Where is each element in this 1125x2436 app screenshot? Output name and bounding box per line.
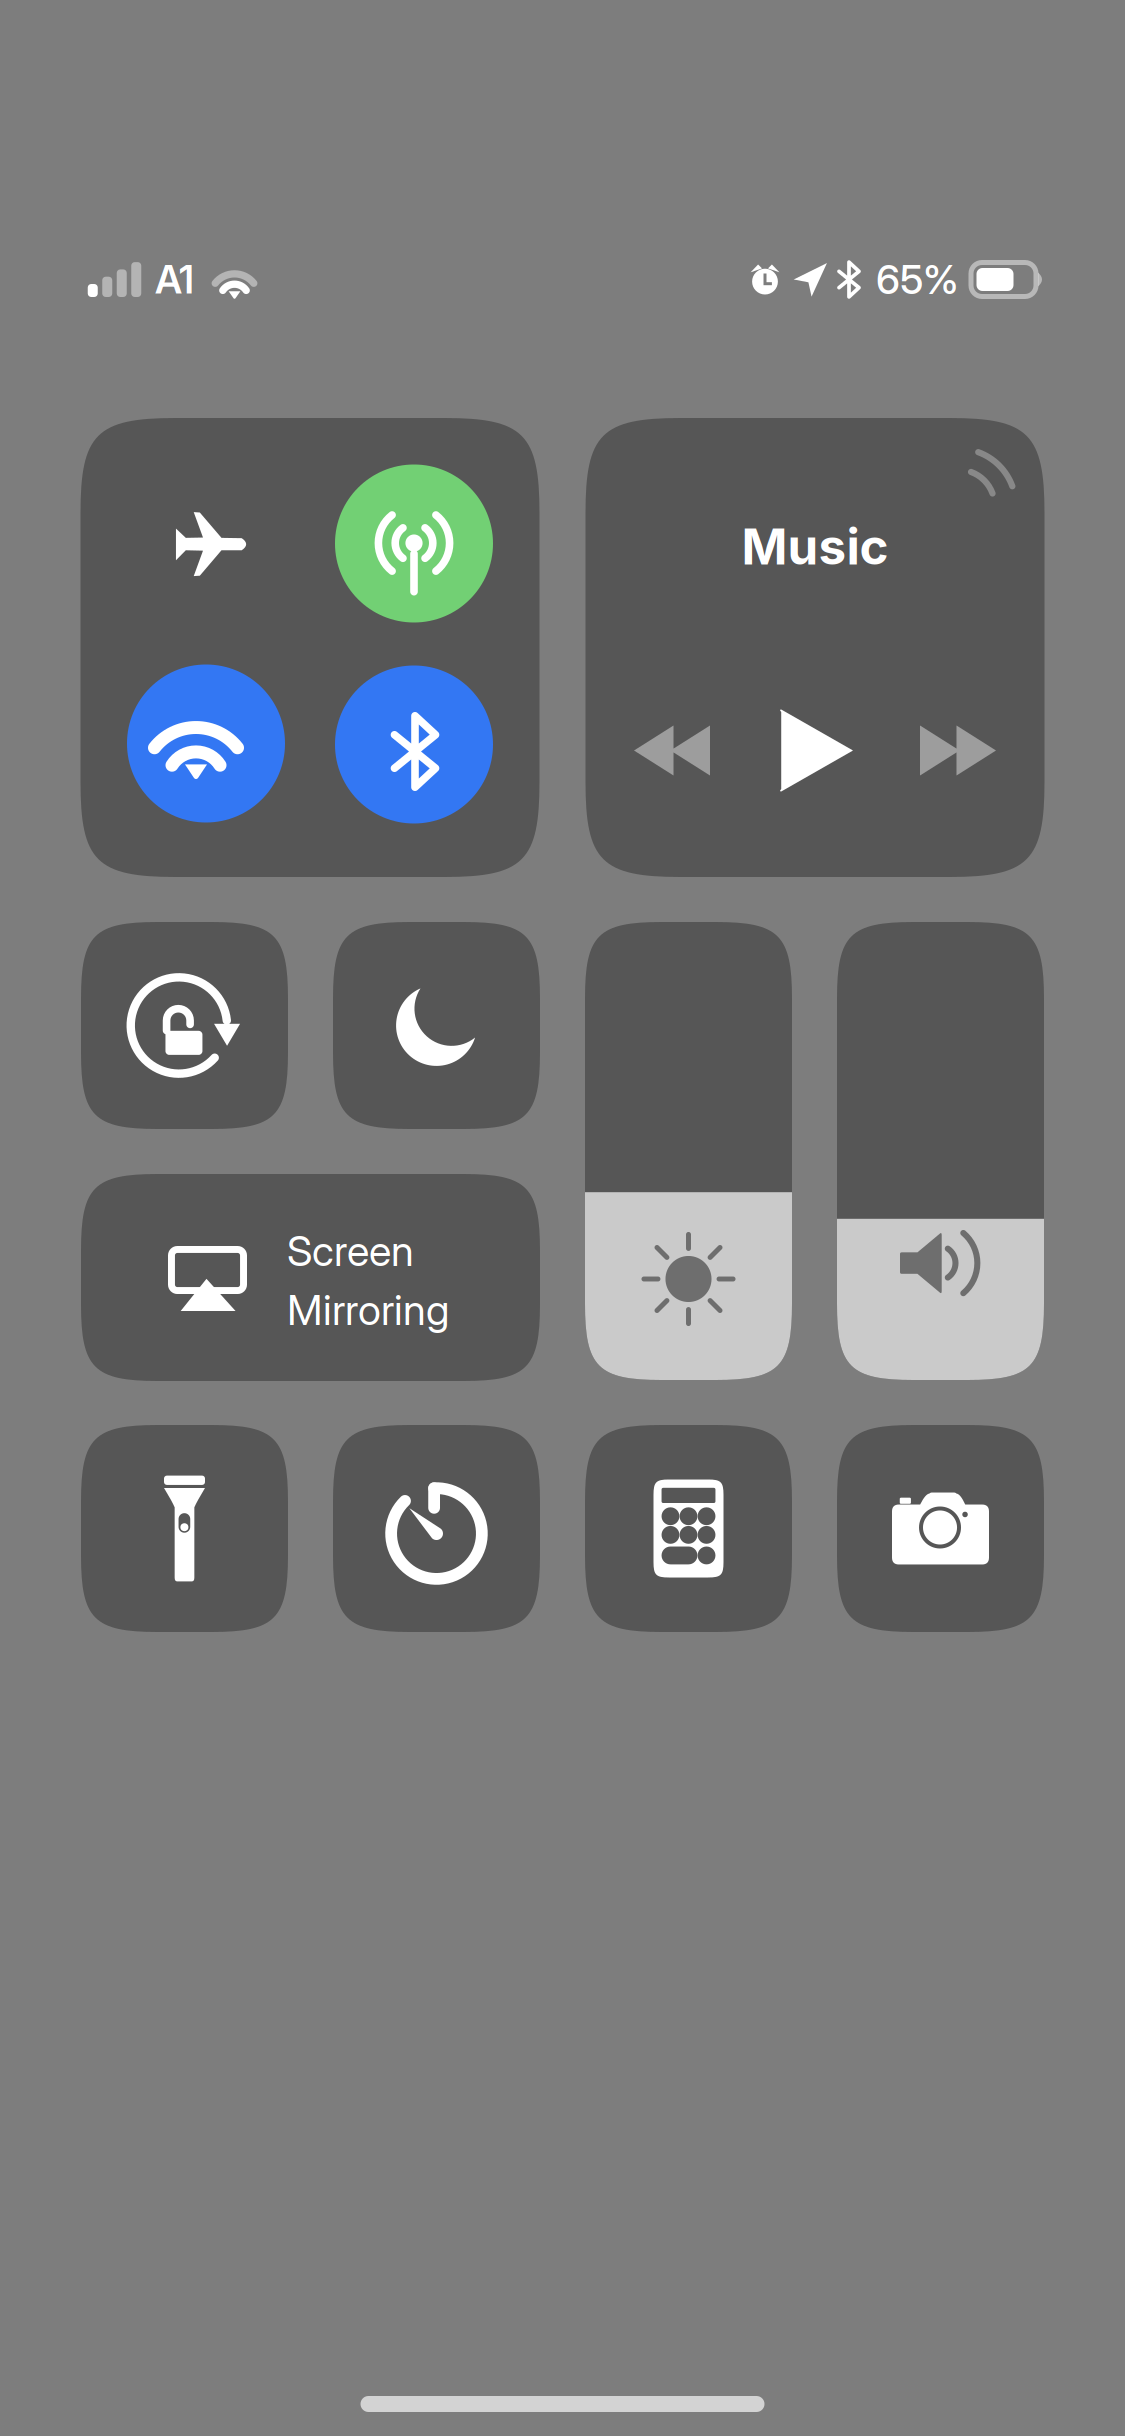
button[interactable]: Brightness — [585, 922, 792, 1380]
staticText: Music — [741, 517, 888, 576]
button[interactable]: Camera — [837, 1425, 1044, 1632]
button[interactable]: Timer — [333, 1425, 540, 1632]
staticText: 65% — [876, 255, 959, 304]
staticText: Mirroring — [287, 1285, 449, 1335]
button[interactable]: Do Not Disturb — [333, 922, 540, 1129]
button[interactable]: Screen Mirroring — [81, 1174, 540, 1381]
button[interactable]: Bluetooth — [311, 641, 517, 847]
button[interactable]: Airplane Mode — [107, 439, 313, 645]
button[interactable]: Next Track — [888, 688, 1028, 812]
staticText: A1 — [155, 256, 194, 303]
button[interactable]: Previous Track — [602, 688, 742, 812]
button[interactable]: Calculator — [585, 1425, 792, 1632]
staticText: Screen — [287, 1226, 414, 1276]
button[interactable]: AirPlay — [928, 416, 1048, 536]
button[interactable]: Cellular Data — [311, 440, 517, 646]
button[interactable]: Play — [746, 688, 886, 812]
button[interactable]: Wi-Fi — [103, 640, 309, 846]
button[interactable]: Volume — [837, 922, 1044, 1380]
button[interactable]: Rotation Lock — [81, 922, 288, 1129]
button[interactable]: Flashlight — [81, 1425, 288, 1632]
